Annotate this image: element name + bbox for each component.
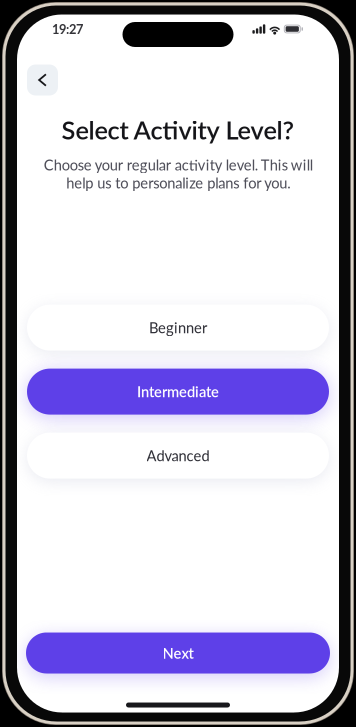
button[interactable]: Next <box>26 632 330 673</box>
button[interactable]: Intermediate <box>27 369 329 415</box>
staticText: Advanced <box>146 447 209 464</box>
staticText: Choose your regular activity level. This… <box>43 156 312 192</box>
staticText: Next <box>162 644 193 662</box>
button[interactable]: Back <box>27 64 58 95</box>
staticText: Intermediate <box>137 383 219 400</box>
staticText: 19:27 <box>52 21 83 37</box>
button[interactable]: Advanced <box>27 433 329 479</box>
staticText: Select Activity Level? <box>61 114 294 145</box>
staticText: Beginner <box>149 319 207 336</box>
button[interactable]: Beginner <box>27 305 329 351</box>
